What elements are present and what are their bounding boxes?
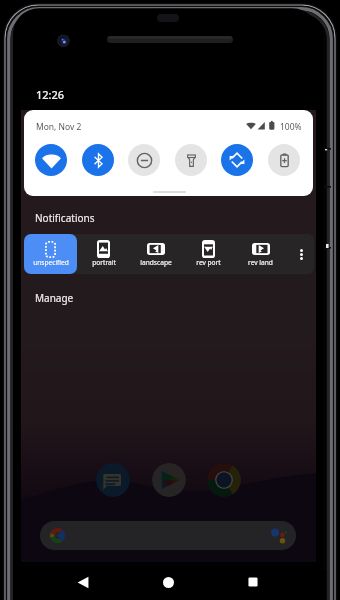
button[interactable]: Flashlight [175, 144, 207, 176]
button[interactable]: Do not disturb [128, 144, 160, 176]
button[interactable]: Messages [96, 463, 130, 497]
staticText: Manage [35, 291, 74, 305]
button[interactable]: Back [69, 570, 97, 594]
staticText: Notifications [35, 211, 95, 225]
staticText: landscape [140, 258, 172, 267]
button[interactable]: Wi-Fi [35, 144, 67, 176]
button[interactable]: Play Store [152, 463, 186, 497]
staticText: rev land [248, 258, 273, 267]
button[interactable]: Auto-rotate [221, 144, 253, 176]
staticText: portrait [92, 258, 116, 267]
button[interactable]: rev land [234, 234, 287, 274]
button[interactable]: rev port [182, 234, 235, 274]
button[interactable]: Recents [239, 570, 267, 594]
staticText: Mon, Nov 2 [36, 121, 82, 133]
button[interactable]: landscape [129, 234, 182, 274]
button[interactable]: More options [290, 234, 312, 274]
staticText: 12:26 [36, 87, 65, 102]
staticText: 100% [280, 121, 302, 133]
button[interactable]: Battery saver [268, 144, 300, 176]
staticText: unspecified [33, 258, 69, 267]
staticText: rev port [196, 258, 221, 267]
button[interactable]: portrait [77, 234, 130, 274]
button[interactable]: Bluetooth [82, 144, 114, 176]
button[interactable]: unspecified [24, 234, 77, 274]
button[interactable]: Home [154, 570, 182, 594]
button[interactable]: Chrome [207, 463, 241, 497]
button[interactable]: Search [40, 521, 296, 550]
